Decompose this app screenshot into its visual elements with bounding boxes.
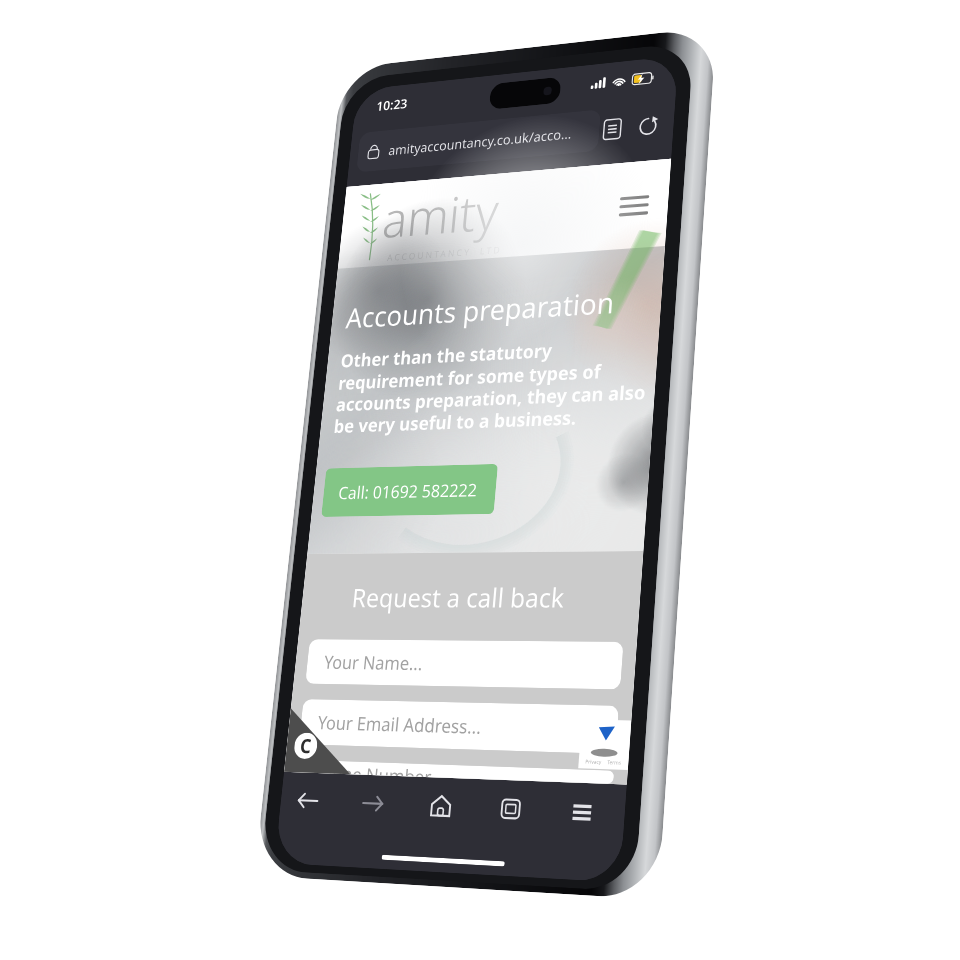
staticText: Privacy xyxy=(585,758,602,766)
staticText: Your Name... xyxy=(323,650,424,676)
staticText: Other than the statutory requirement for… xyxy=(333,332,651,438)
button[interactable]: Reload page xyxy=(631,109,664,143)
staticText: Terms xyxy=(607,759,622,767)
button[interactable]: Open navigation menu xyxy=(612,184,655,227)
staticText: Accounts preparation xyxy=(344,282,616,336)
button[interactable]: Reader mode xyxy=(596,113,628,146)
staticText: amityaccountancy.co.uk/acco… xyxy=(388,124,573,159)
staticText: C xyxy=(299,733,313,759)
staticText: Your Email Address... xyxy=(317,710,482,740)
button[interactable]: Call: 01692 582222 xyxy=(321,464,498,517)
button[interactable]: amityaccountancy.co.uk/acco… xyxy=(356,109,601,173)
staticText: Request a call back xyxy=(301,579,621,616)
button[interactable]: Back xyxy=(280,772,335,829)
staticText: Call: 01692 582222 xyxy=(337,477,478,504)
staticText: 10:23 xyxy=(376,94,409,114)
staticText: amity xyxy=(380,176,502,252)
button[interactable]: Forward xyxy=(345,774,401,832)
button[interactable]: Tabs xyxy=(481,779,539,839)
button[interactable]: Cookie settings xyxy=(293,732,318,759)
button[interactable]: Your Email Address... xyxy=(299,699,619,754)
staticText: Phone Number... xyxy=(313,760,444,778)
staticText: ACCOUNTANCY LTD xyxy=(387,243,503,264)
button[interactable]: Phone Number... xyxy=(296,760,614,784)
button[interactable]: Menu xyxy=(552,782,611,843)
button[interactable]: Home xyxy=(412,777,470,835)
button[interactable]: Your Name... xyxy=(305,639,624,689)
